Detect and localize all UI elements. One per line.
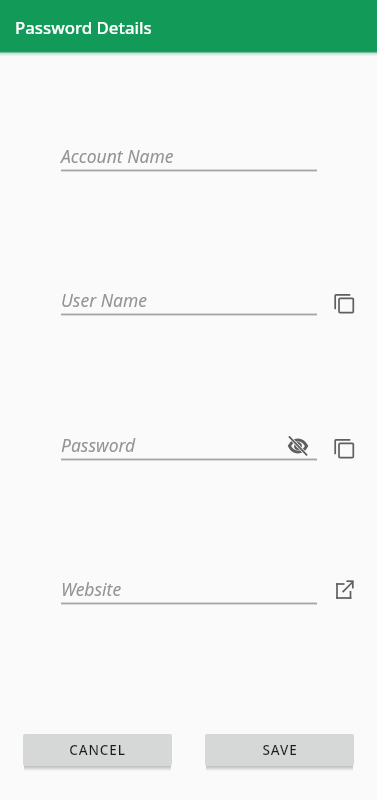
button[interactable]: SAVE <box>205 734 354 766</box>
button[interactable]: CANCEL <box>23 734 172 766</box>
button[interactable]: Password <box>61 430 317 462</box>
staticText: User Name <box>61 288 148 312</box>
staticText: CANCEL <box>69 741 126 759</box>
staticText: Password <box>61 433 136 457</box>
button[interactable]: Copy user name <box>332 293 356 317</box>
button[interactable]: Show password <box>286 434 310 458</box>
button[interactable]: Open website <box>333 578 357 602</box>
button[interactable]: User Name <box>61 285 317 317</box>
staticText: Password Details <box>15 16 152 39</box>
button[interactable]: Account Name <box>61 141 317 173</box>
button[interactable]: Copy password <box>332 438 356 462</box>
button[interactable]: Website <box>61 574 317 606</box>
staticText: SAVE <box>262 741 298 759</box>
staticText: Account Name <box>61 144 174 168</box>
staticText: Website <box>61 577 122 601</box>
